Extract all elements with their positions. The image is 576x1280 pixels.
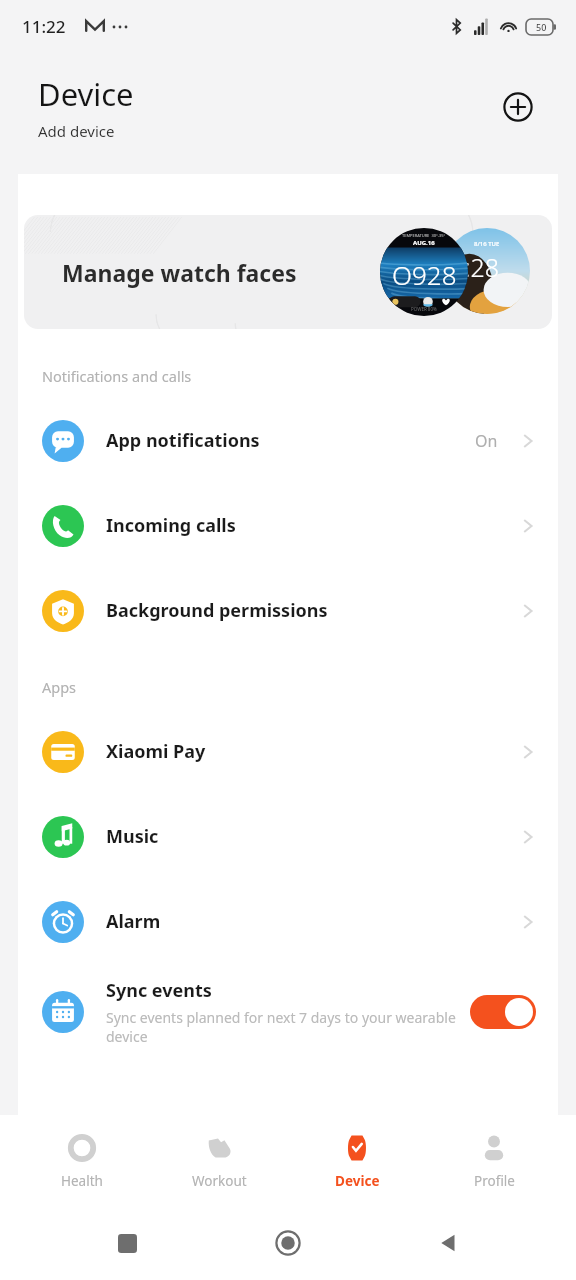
- button[interactable]: Xiaomi Pay: [18, 709, 558, 794]
- staticText: Apps: [42, 677, 77, 697]
- button[interactable]: Workout: [164, 1115, 274, 1205]
- staticText: On: [475, 430, 498, 452]
- staticText: Sync events planned for next 7 days to y…: [106, 1008, 458, 1046]
- button[interactable]: Home: [271, 1226, 305, 1260]
- staticText: App notifications: [106, 428, 475, 453]
- button[interactable]: Add device: [496, 85, 540, 129]
- staticText: Xiaomi Pay: [106, 739, 520, 764]
- button[interactable]: Music: [18, 794, 558, 879]
- staticText: Incoming calls: [106, 513, 520, 538]
- staticText: AUG.16: [413, 239, 435, 247]
- button[interactable]: Background permissions: [18, 568, 558, 653]
- staticText: Device: [38, 73, 134, 115]
- staticText: 11:22: [22, 15, 66, 38]
- staticText: Sync events: [106, 978, 212, 1003]
- staticText: Notifications and calls: [42, 366, 192, 386]
- button[interactable]: 8/16 TUE: [24, 215, 552, 329]
- staticText: Health: [61, 1172, 103, 1190]
- button[interactable]: App notifications: [18, 398, 558, 483]
- button[interactable]: Device: [302, 1115, 412, 1205]
- staticText: 8/16 TUE: [474, 240, 500, 248]
- staticText: Music: [106, 824, 520, 849]
- staticText: Manage watch faces: [62, 257, 297, 288]
- staticText: Add device: [38, 121, 115, 141]
- button[interactable]: Sync events: [18, 964, 558, 1060]
- staticText: 50: [536, 21, 547, 33]
- button[interactable]: Alarm: [18, 879, 558, 964]
- staticText: Background permissions: [106, 598, 520, 623]
- staticText: Alarm: [106, 909, 520, 934]
- button[interactable]: Sync events toggle, on: [470, 995, 536, 1029]
- button[interactable]: Recents: [110, 1226, 144, 1260]
- button[interactable]: Profile: [439, 1115, 549, 1205]
- button[interactable]: Health: [27, 1115, 137, 1205]
- staticText: Workout: [192, 1172, 247, 1190]
- staticText: O928: [392, 257, 457, 292]
- button[interactable]: Back: [432, 1226, 466, 1260]
- staticText: 9:28: [450, 250, 499, 284]
- staticText: POWER 80%: [411, 306, 437, 312]
- staticText: Profile: [474, 1172, 515, 1190]
- staticText: TEMPERATURE 30°-35°: [402, 233, 446, 238]
- staticText: Device: [335, 1172, 380, 1190]
- button[interactable]: Incoming calls: [18, 483, 558, 568]
